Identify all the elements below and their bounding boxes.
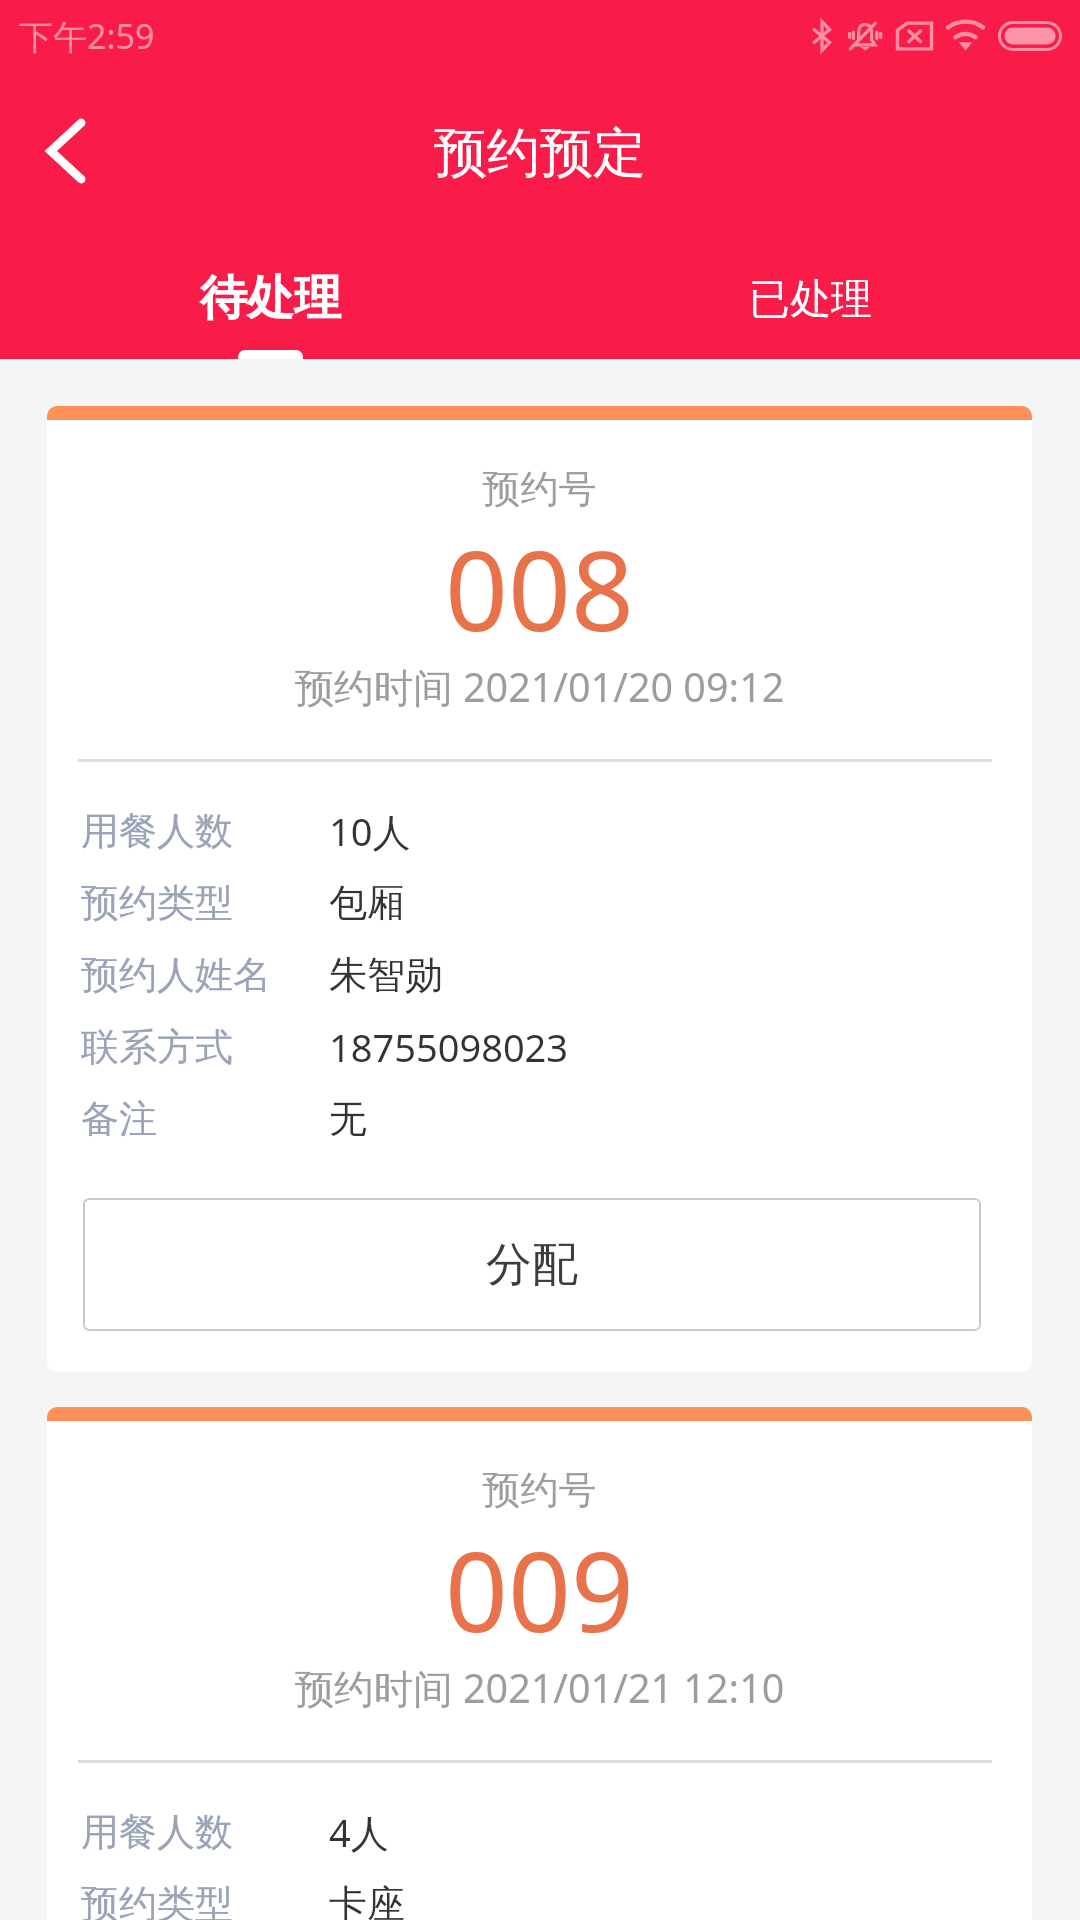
staticText: 卡座: [329, 1880, 405, 1920]
button[interactable]: 预约号: [47, 406, 1032, 1372]
staticText: 预约类型: [81, 879, 329, 927]
staticText: 包厢: [329, 879, 405, 927]
button[interactable]: 已处理: [540, 231, 1080, 359]
staticText: 下午2:59: [19, 13, 155, 59]
staticText: 朱智勋: [329, 951, 443, 999]
staticText: 4人: [329, 1806, 389, 1858]
staticText: 008: [47, 513, 1032, 663]
staticText: 待处理: [200, 269, 341, 328]
staticText: 预约时间 2021/01/21 12:10: [47, 1661, 1032, 1715]
staticText: 预约时间 2021/01/20 09:12: [47, 660, 1032, 714]
staticText: 009: [47, 1514, 1032, 1664]
staticText: 10人: [329, 805, 411, 857]
staticText: 已处理: [749, 274, 872, 326]
staticText: 备注: [81, 1095, 329, 1143]
staticText: 用餐人数: [81, 1808, 329, 1856]
staticText: 用餐人数: [81, 807, 329, 855]
staticText: 预约号: [47, 1466, 1032, 1514]
staticText: 18755098023: [329, 1021, 569, 1073]
button[interactable]: 分配: [83, 1198, 981, 1331]
button[interactable]: 预约号: [47, 1407, 1032, 1920]
staticText: 无: [329, 1095, 367, 1143]
staticText: 预约号: [47, 465, 1032, 513]
staticText: 预约人姓名: [81, 951, 329, 999]
button[interactable]: 待处理: [0, 231, 540, 359]
staticText: 联系方式: [81, 1023, 329, 1071]
staticText: 预约预定: [434, 120, 646, 187]
button[interactable]: Back: [24, 109, 108, 193]
staticText: 预约类型: [81, 1880, 329, 1920]
staticText: 分配: [486, 1236, 578, 1294]
